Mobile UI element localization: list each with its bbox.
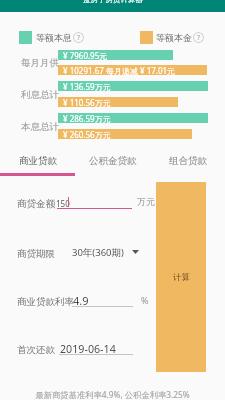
staticText: 每月月供 bbox=[21, 57, 59, 69]
staticText: 2019-06-14 bbox=[60, 342, 116, 357]
button[interactable] bbox=[10, 183, 146, 223]
staticText: ¥ 10291.67 每月递减 ¥ 17.01元 bbox=[63, 65, 176, 75]
staticText: 商贷金额 bbox=[17, 198, 55, 210]
staticText: ¥ 7960.95元 bbox=[63, 50, 108, 60]
staticText: 等额本息 bbox=[36, 32, 72, 43]
staticText: ? bbox=[197, 33, 201, 43]
staticText: 商业贷款 bbox=[19, 155, 57, 167]
staticText: 本息总计 bbox=[21, 121, 59, 133]
button[interactable]: 说明 bbox=[193, 32, 204, 43]
staticText: 商贷期限 bbox=[17, 248, 55, 260]
staticText: 最新商贷基准利率4.9%, 公积金利率3.25% bbox=[0, 389, 225, 400]
staticText: 万元 bbox=[137, 196, 155, 207]
staticText: 蓝房子房贷计算器 bbox=[83, 0, 143, 4]
staticText: % bbox=[141, 294, 149, 306]
staticText: 4.9 bbox=[73, 293, 89, 308]
staticText: 公积金贷款 bbox=[89, 155, 137, 167]
staticText: ¥ 136.59万元 bbox=[63, 81, 111, 91]
button[interactable] bbox=[10, 329, 146, 369]
staticText: 组合贷款 bbox=[169, 155, 207, 167]
staticText: 30年(360期) bbox=[72, 246, 124, 259]
staticText: ¥ 110.56万元 bbox=[63, 97, 111, 107]
staticText: 等额本金 bbox=[156, 32, 192, 43]
staticText: ¥ 260.56万元 bbox=[63, 129, 111, 139]
button[interactable]: 计算 bbox=[156, 182, 206, 372]
button[interactable]: 商业贷款 bbox=[0, 145, 75, 176]
button[interactable]: 公积金贷款 bbox=[75, 145, 150, 176]
button[interactable]: 蓝房子房贷计算器 bbox=[0, 0, 225, 12]
button[interactable]: 组合贷款 bbox=[150, 145, 225, 176]
staticText: 首次还款 bbox=[17, 344, 55, 356]
button[interactable] bbox=[10, 281, 146, 321]
other: 选择期限 bbox=[132, 250, 139, 254]
staticText: 商业贷款利率 bbox=[17, 296, 74, 308]
staticText: ? bbox=[77, 33, 81, 43]
staticText: ¥ 286.59万元 bbox=[63, 113, 111, 123]
button[interactable] bbox=[10, 233, 146, 273]
staticText: 计算 bbox=[173, 272, 190, 283]
button[interactable]: 说明 bbox=[73, 32, 84, 43]
staticText: 150 bbox=[56, 198, 70, 209]
staticText: 利息总计 bbox=[21, 89, 59, 101]
